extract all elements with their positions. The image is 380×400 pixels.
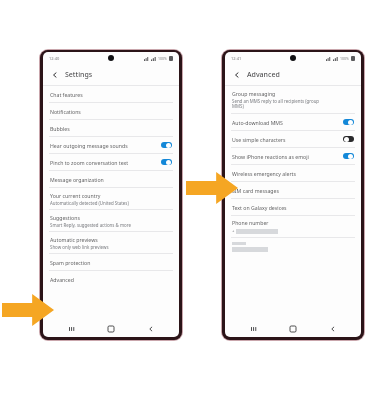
- button[interactable]: Show iPhone reactions as emoji: [225, 148, 361, 164]
- staticText: Wireless emergency alerts: [232, 170, 296, 177]
- staticText: Send an MMS reply to all recipients (gro…: [232, 98, 320, 110]
- button[interactable]: On: [161, 159, 172, 165]
- button[interactable]: Chat features: [43, 86, 179, 102]
- button[interactable]: Suggestions: [43, 210, 179, 231]
- staticText: Smart Reply, suggested actions & more: [50, 222, 131, 228]
- staticText: Automatic previews: [50, 236, 98, 243]
- staticText: Show iPhone reactions as emoji: [232, 153, 309, 160]
- staticText: 12:41: [231, 56, 242, 61]
- button[interactable]: Message organization: [43, 171, 179, 187]
- staticText: Hear outgoing message sounds: [50, 142, 128, 149]
- staticText: Automatically detected (United States): [50, 200, 129, 206]
- button[interactable]: Back: [231, 69, 243, 81]
- staticText: Use simple characters: [232, 136, 286, 143]
- button[interactable]: Your current country: [43, 188, 179, 209]
- button[interactable]: Tap Advanced: [2, 294, 54, 326]
- button[interactable]: Use simple characters: [225, 131, 361, 147]
- button[interactable]: Spam protection: [43, 254, 179, 270]
- button[interactable]: Group messaging: [225, 86, 361, 113]
- staticText: Notifications: [50, 108, 81, 115]
- staticText: Your current country: [50, 192, 101, 199]
- button[interactable]: Bubbles: [43, 120, 179, 136]
- staticText: SIM card messages: [232, 187, 279, 194]
- staticText: Pinch to zoom conversation text: [50, 159, 129, 166]
- button[interactable]: Back: [49, 69, 61, 81]
- button[interactable]: Advanced: [43, 271, 179, 287]
- button[interactable]: SIM card messages: [225, 182, 361, 198]
- staticText: Text on Galaxy devices: [232, 204, 287, 211]
- button[interactable]: Automatic previews: [43, 232, 179, 253]
- staticText: +: [232, 228, 235, 234]
- button[interactable]: Auto-download MMS: [225, 114, 361, 130]
- button[interactable]: Text on Galaxy devices: [225, 199, 361, 215]
- button[interactable]: Back: [140, 322, 162, 336]
- staticText: 12:40: [49, 56, 60, 61]
- staticText: 100%: [158, 56, 167, 61]
- staticText: Show only web link previews: [50, 244, 109, 250]
- staticText: Settings: [65, 70, 93, 80]
- button[interactable]: Notifications: [43, 103, 179, 119]
- button[interactable]: Home: [282, 322, 304, 336]
- staticText: Advanced: [50, 276, 74, 283]
- button[interactable]: Wireless emergency alerts: [225, 165, 361, 181]
- staticText: 100%: [340, 56, 349, 61]
- staticText: Chat features: [50, 91, 83, 98]
- staticText: Message organization: [50, 176, 104, 183]
- staticText: Group messaging: [232, 90, 276, 97]
- button[interactable]: Recents: [243, 322, 265, 336]
- button[interactable]: Off: [343, 136, 354, 142]
- button[interactable]: Pinch to zoom conversation text: [43, 154, 179, 170]
- staticText: Auto-download MMS: [232, 119, 283, 126]
- button[interactable]: Recents: [61, 322, 83, 336]
- button[interactable]: Hear outgoing message sounds: [43, 137, 179, 153]
- button[interactable]: Back: [322, 322, 344, 336]
- staticText: Suggestions: [50, 214, 80, 221]
- button[interactable]: On: [343, 153, 354, 159]
- button[interactable]: Go to Advanced screen: [186, 172, 238, 204]
- staticText: Bubbles: [50, 125, 70, 132]
- staticText: Advanced: [247, 70, 280, 80]
- button[interactable]: On: [343, 119, 354, 125]
- button[interactable]: Phone number: [225, 216, 361, 238]
- staticText: Spam protection: [50, 259, 91, 266]
- button[interactable]: On: [161, 142, 172, 148]
- button[interactable]: Home: [100, 322, 122, 336]
- staticText: Phone number: [232, 219, 269, 226]
